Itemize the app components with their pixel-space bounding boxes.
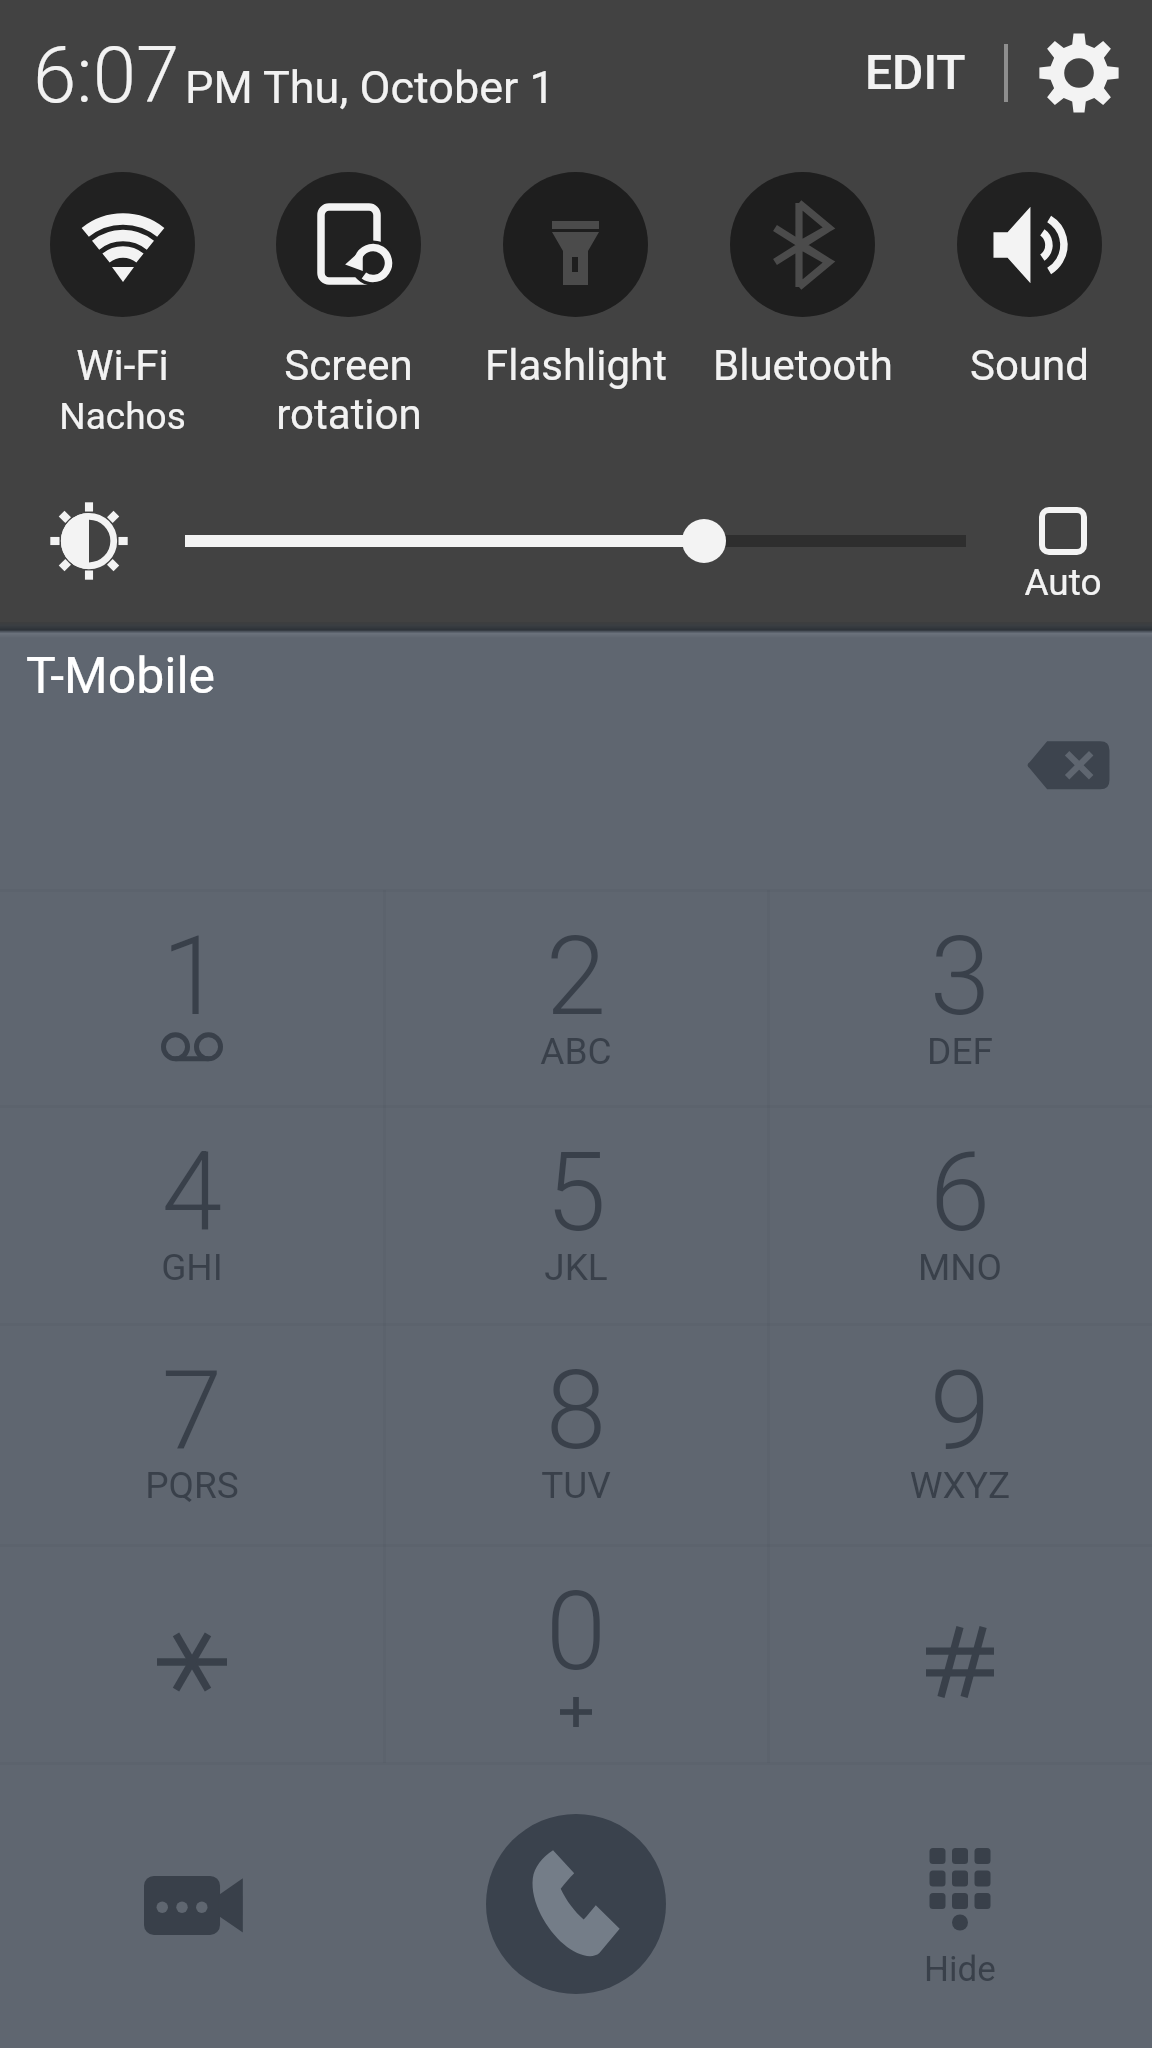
staticText: 0 [384,1568,768,1696]
button[interactable]: Flashlight [462,172,689,390]
staticText: TUV [384,1464,768,1507]
staticText: WXYZ [768,1464,1152,1507]
staticText: 8 [384,1347,768,1475]
staticText: rotation [276,390,422,439]
button[interactable]: Auto brightness [1008,490,1118,610]
staticText: 7 [0,1347,384,1475]
button[interactable]: 3 [768,890,1152,1106]
staticText: Hide [870,1949,1050,1990]
staticText: Bluetooth [713,341,893,390]
button[interactable] [0,1545,384,1763]
staticText: 2 [384,913,768,1041]
staticText: PQRS [0,1464,384,1507]
button[interactable]: 4 [0,1106,384,1324]
button[interactable]: 5 [384,1106,768,1324]
button[interactable]: Backspace [995,720,1139,810]
staticText: DEF [768,1030,1152,1073]
staticText: Nachos [59,395,186,438]
button[interactable]: Call [486,1814,666,1994]
button[interactable]: 0 [384,1545,768,1763]
staticText: 4 [0,1129,384,1257]
staticText: T-Mobile [26,647,216,706]
button[interactable]: EDIT [840,14,990,130]
button[interactable]: Settings [1031,25,1127,121]
staticText: GHI [0,1246,384,1289]
button[interactable]: Bluetooth [689,172,916,390]
staticText: PM Thu, October 1 [185,61,555,114]
button[interactable]: 7 [0,1324,384,1545]
staticText: Wi-Fi [76,341,169,390]
button[interactable]: 8 [384,1324,768,1545]
staticText: JKL [384,1246,768,1289]
button[interactable]: Wi-Fi [9,172,235,433]
button[interactable]: 6 [768,1106,1152,1324]
staticText: 3 [768,913,1152,1041]
button[interactable]: 1 [0,890,384,1106]
button[interactable]: Video call [96,1850,288,1960]
staticText: MNO [768,1246,1152,1289]
staticText: ABC [384,1030,768,1073]
staticText: Auto [1008,561,1118,604]
button[interactable]: Hide keypad [870,1840,1050,1990]
button[interactable]: 2 [384,890,768,1106]
button[interactable]: Sound [916,172,1143,390]
staticText: 9 [768,1347,1152,1475]
staticText: 5 [384,1129,768,1257]
staticText: 6 [768,1129,1152,1257]
staticText: 6:07 [33,30,180,121]
button[interactable] [768,1545,1152,1763]
staticText: Flashlight [485,341,667,390]
staticText: 1 [0,913,384,1041]
staticText: EDIT [865,44,966,100]
button[interactable]: 9 [768,1324,1152,1545]
staticText: Screen [284,341,413,390]
button[interactable]: Screen [235,172,462,439]
staticText: Sound [970,341,1089,390]
